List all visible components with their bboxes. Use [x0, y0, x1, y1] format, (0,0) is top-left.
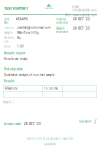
staticText: 28 OCT '23 [24, 122, 41, 126]
staticText: Waterflow 500g [17, 31, 39, 34]
staticText: OASISLAB [45, 7, 53, 9]
staticText: Signature [79, 120, 92, 123]
staticText: 456495 [16, 17, 28, 21]
staticText: Results are ready [4, 57, 27, 61]
staticText: Test objective [4, 67, 23, 71]
staticText: 1:40 [17, 45, 24, 48]
staticText: Sample [4, 31, 13, 34]
staticText: Dose [4, 45, 11, 48]
staticText: Sample received [56, 27, 68, 34]
staticText: Results [4, 79, 14, 83]
staticText: Testing ordered [56, 17, 68, 25]
staticText: Test No. [4, 17, 9, 25]
staticText: 28 OCT '23 [73, 27, 90, 30]
staticText: Sample 1 [3, 100, 15, 104]
staticText: Patient [4, 26, 14, 29]
staticText: Reference [4, 36, 15, 43]
staticText: 28 OCT '23 [73, 17, 90, 21]
staticText: Ask for test & measurable materials [27, 137, 73, 140]
staticText: Analysis made [4, 122, 22, 126]
staticText: Alkalinity [5, 87, 17, 90]
staticText: 15.58 mg [44, 87, 58, 90]
staticText: TEST REPORT [4, 5, 28, 11]
staticText: Qualitative analysis of non-met sample [4, 73, 55, 77]
staticText: / [94, 117, 96, 126]
staticText: Sample report [4, 51, 25, 55]
staticText: Web: www.oasislab.com [65, 13, 96, 17]
staticText: E-mail: info@oasislab.com [72, 5, 96, 12]
staticText: oasislab [44, 142, 56, 146]
staticText: oasislab@protonmail.com [17, 26, 50, 29]
staticText: No [17, 36, 21, 40]
